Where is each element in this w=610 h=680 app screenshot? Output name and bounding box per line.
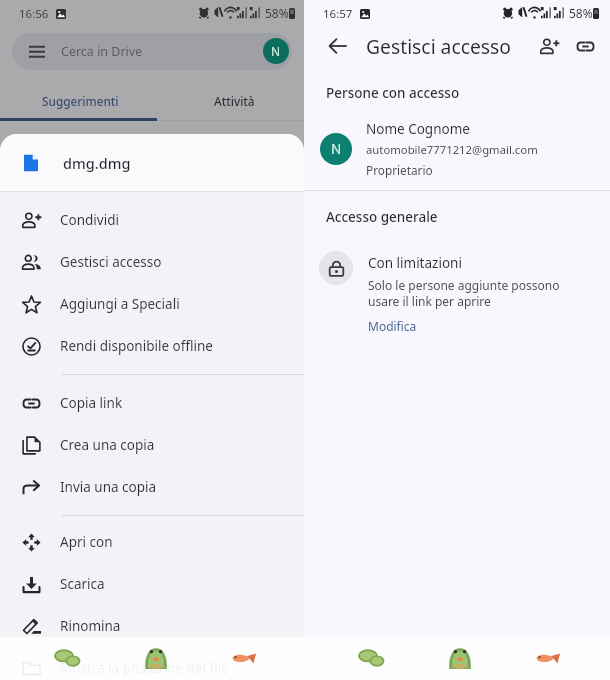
button[interactable]: Gestisci accesso xyxy=(0,241,304,283)
button[interactable]: Invia una copia xyxy=(0,466,304,508)
staticText: Scarica xyxy=(60,575,105,593)
button[interactable]: Scarica xyxy=(0,563,304,605)
staticText: Invia una copia xyxy=(60,478,157,496)
button[interactable]: Aggiungi a Speciali xyxy=(0,283,304,325)
staticText: usare il link per aprire xyxy=(368,293,491,309)
button[interactable]: Add person xyxy=(536,33,562,59)
staticText: Nome Cognome xyxy=(366,120,470,138)
staticText: Persone con accesso xyxy=(326,84,460,102)
staticText: 58% xyxy=(569,5,593,21)
staticText: Gestisci accesso xyxy=(366,33,512,59)
button[interactable]: Crea una copia xyxy=(0,424,304,466)
button[interactable]: Back xyxy=(325,33,351,59)
staticText: Proprietario xyxy=(366,162,433,178)
staticText: Con limitazioni xyxy=(368,254,462,272)
staticText: N xyxy=(271,43,281,59)
staticText: Accesso generale xyxy=(326,208,438,226)
staticText: Suggerimenti xyxy=(42,93,119,109)
button[interactable]: Copy link xyxy=(572,33,598,59)
staticText: Rendi disponibile offline xyxy=(60,337,213,355)
staticText: Modifica xyxy=(368,318,417,334)
staticText: N xyxy=(331,140,342,158)
staticText: Rinomina xyxy=(60,617,121,635)
staticText: Condividi xyxy=(60,211,119,229)
staticText: Solo le persone aggiunte possono xyxy=(368,277,560,293)
staticText: Mostra la posizione del file xyxy=(60,659,229,677)
button[interactable]: Cerca in Drive xyxy=(12,33,292,70)
staticText: Apri con xyxy=(60,533,113,551)
staticText: Cerca in Drive xyxy=(61,43,143,60)
button[interactable]: Rinomina xyxy=(0,605,304,647)
staticText: Attività xyxy=(214,93,255,109)
staticText: 16:57 xyxy=(323,6,353,22)
staticText: dmg.dmg xyxy=(63,153,131,173)
staticText: 58% xyxy=(265,5,289,21)
staticText: Crea una copia xyxy=(60,436,155,454)
staticText: Copia link xyxy=(60,394,123,412)
button[interactable]: Rendi disponibile offline xyxy=(0,325,304,367)
staticText: 16:56 xyxy=(19,6,49,22)
staticText: Aggiungi a Speciali xyxy=(60,295,180,313)
button[interactable]: Condividi xyxy=(0,199,304,241)
button[interactable]: Modifica xyxy=(368,318,417,334)
staticText: Gestisci accesso xyxy=(60,253,162,271)
button[interactable]: Mostra la posizione del file xyxy=(0,647,304,680)
staticText: automobile7771212@gmail.com xyxy=(366,142,538,157)
button[interactable]: Copia link xyxy=(0,382,304,424)
button[interactable]: Apri con xyxy=(0,521,304,563)
